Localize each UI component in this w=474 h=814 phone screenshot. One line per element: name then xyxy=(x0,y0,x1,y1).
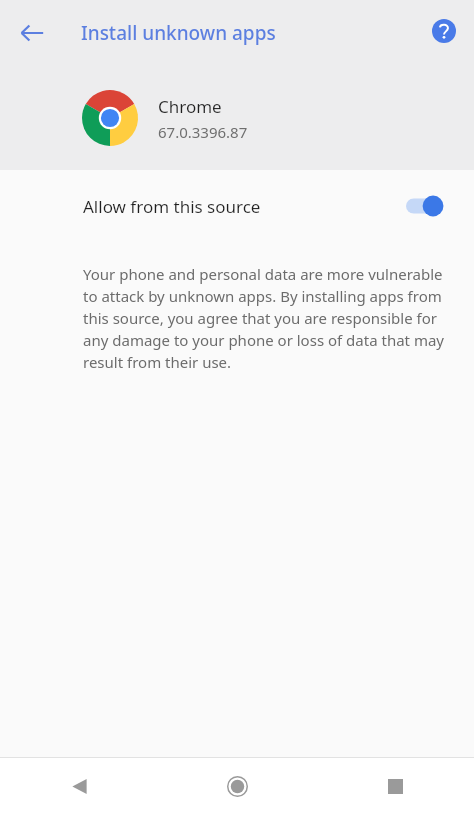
staticText: Allow from this source xyxy=(83,195,406,218)
button[interactable]: Back xyxy=(10,11,54,55)
button[interactable]: Back xyxy=(0,758,158,814)
staticText: Install unknown apps xyxy=(81,20,276,46)
staticText: Chrome xyxy=(158,95,222,118)
button[interactable]: Allow from this source xyxy=(0,170,474,242)
staticText: 67.0.3396.87 xyxy=(158,122,248,142)
button[interactable]: Recent apps xyxy=(316,758,474,814)
staticText: Your phone and personal data are more vu… xyxy=(83,264,448,373)
button[interactable]: Allow from this source toggle xyxy=(406,193,448,219)
button[interactable]: Help xyxy=(425,12,463,50)
button[interactable]: Home xyxy=(158,758,316,814)
